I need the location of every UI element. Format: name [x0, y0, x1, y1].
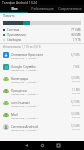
staticText: 2:01:22 [72, 116, 80, 119]
button[interactable]: Recents [54, 141, 63, 150]
staticText: 771 МБ [71, 28, 81, 32]
staticText: Телефон Android 13:24 [2, 1, 37, 5]
button[interactable]: Back [22, 141, 31, 150]
staticText: 6,7 МБ [71, 53, 80, 57]
button[interactable]: Система Android [0, 121, 84, 133]
staticText: 1,9 ГБ [73, 38, 81, 42]
staticText: Сохраненные [58, 6, 82, 11]
button[interactable]: Сохраненные [56, 5, 84, 13]
staticText: Система Android [11, 124, 38, 128]
button[interactable]: Mail [0, 109, 84, 121]
staticText: 2:01:22 [72, 104, 80, 107]
staticText: Процессы [11, 88, 27, 92]
staticText: Система [7, 28, 20, 32]
staticText: Календарь [11, 76, 29, 80]
staticText: Процессов: 1, служб: 1 [11, 116, 39, 119]
staticText: 3,6 МБ [71, 112, 80, 116]
staticText: 7 МБ [73, 65, 80, 69]
staticText: Процессов: 1, служб: 1 [11, 80, 39, 83]
staticText: 2:01:22 [72, 92, 80, 95]
staticText: com.huawei [11, 100, 30, 104]
button[interactable]: com.huawei [0, 97, 84, 109]
staticText: 6,7 МБ [71, 100, 80, 104]
staticText: Google Службы [11, 64, 36, 68]
staticText: 3,5 МБ [71, 76, 80, 80]
button[interactable]: Все [0, 5, 28, 13]
staticText: Приложения [7, 33, 26, 37]
staticText: 11 МБ [72, 88, 80, 92]
staticText: Процессов: 1, служб: 1 [11, 68, 39, 71]
button[interactable]: Google Службы [0, 61, 84, 73]
button[interactable]: Основные Кристалл [0, 49, 84, 61]
staticText: Использовано 1,1 ГБ из 2,0 ГБ [3, 45, 41, 49]
staticText: Процессов: 1, служб: 1 [11, 128, 39, 131]
staticText: Процессов: 1, служб: 1 [11, 56, 39, 59]
staticText: Работающие [31, 6, 54, 11]
staticText: Свободно [7, 38, 22, 42]
staticText: Mail [11, 112, 18, 116]
staticText: Память [3, 14, 15, 18]
staticText: 5,5 МБ [71, 124, 80, 128]
staticText: Процессов: 1, служб: 1 [11, 104, 39, 107]
staticText: Процессов: 1, служб: 1 [11, 92, 39, 95]
staticText: 2:01:22 [72, 80, 80, 83]
button[interactable]: Процессы [0, 85, 84, 97]
button[interactable]: Home [38, 141, 47, 150]
staticText: 2:01:22 [72, 128, 80, 131]
staticText: Все [11, 6, 18, 11]
staticText: Основные Кристалл [11, 52, 44, 56]
button[interactable]: Работающие [28, 5, 56, 13]
staticText: 369 МБ [71, 33, 81, 37]
button[interactable]: Календарь [0, 73, 84, 85]
